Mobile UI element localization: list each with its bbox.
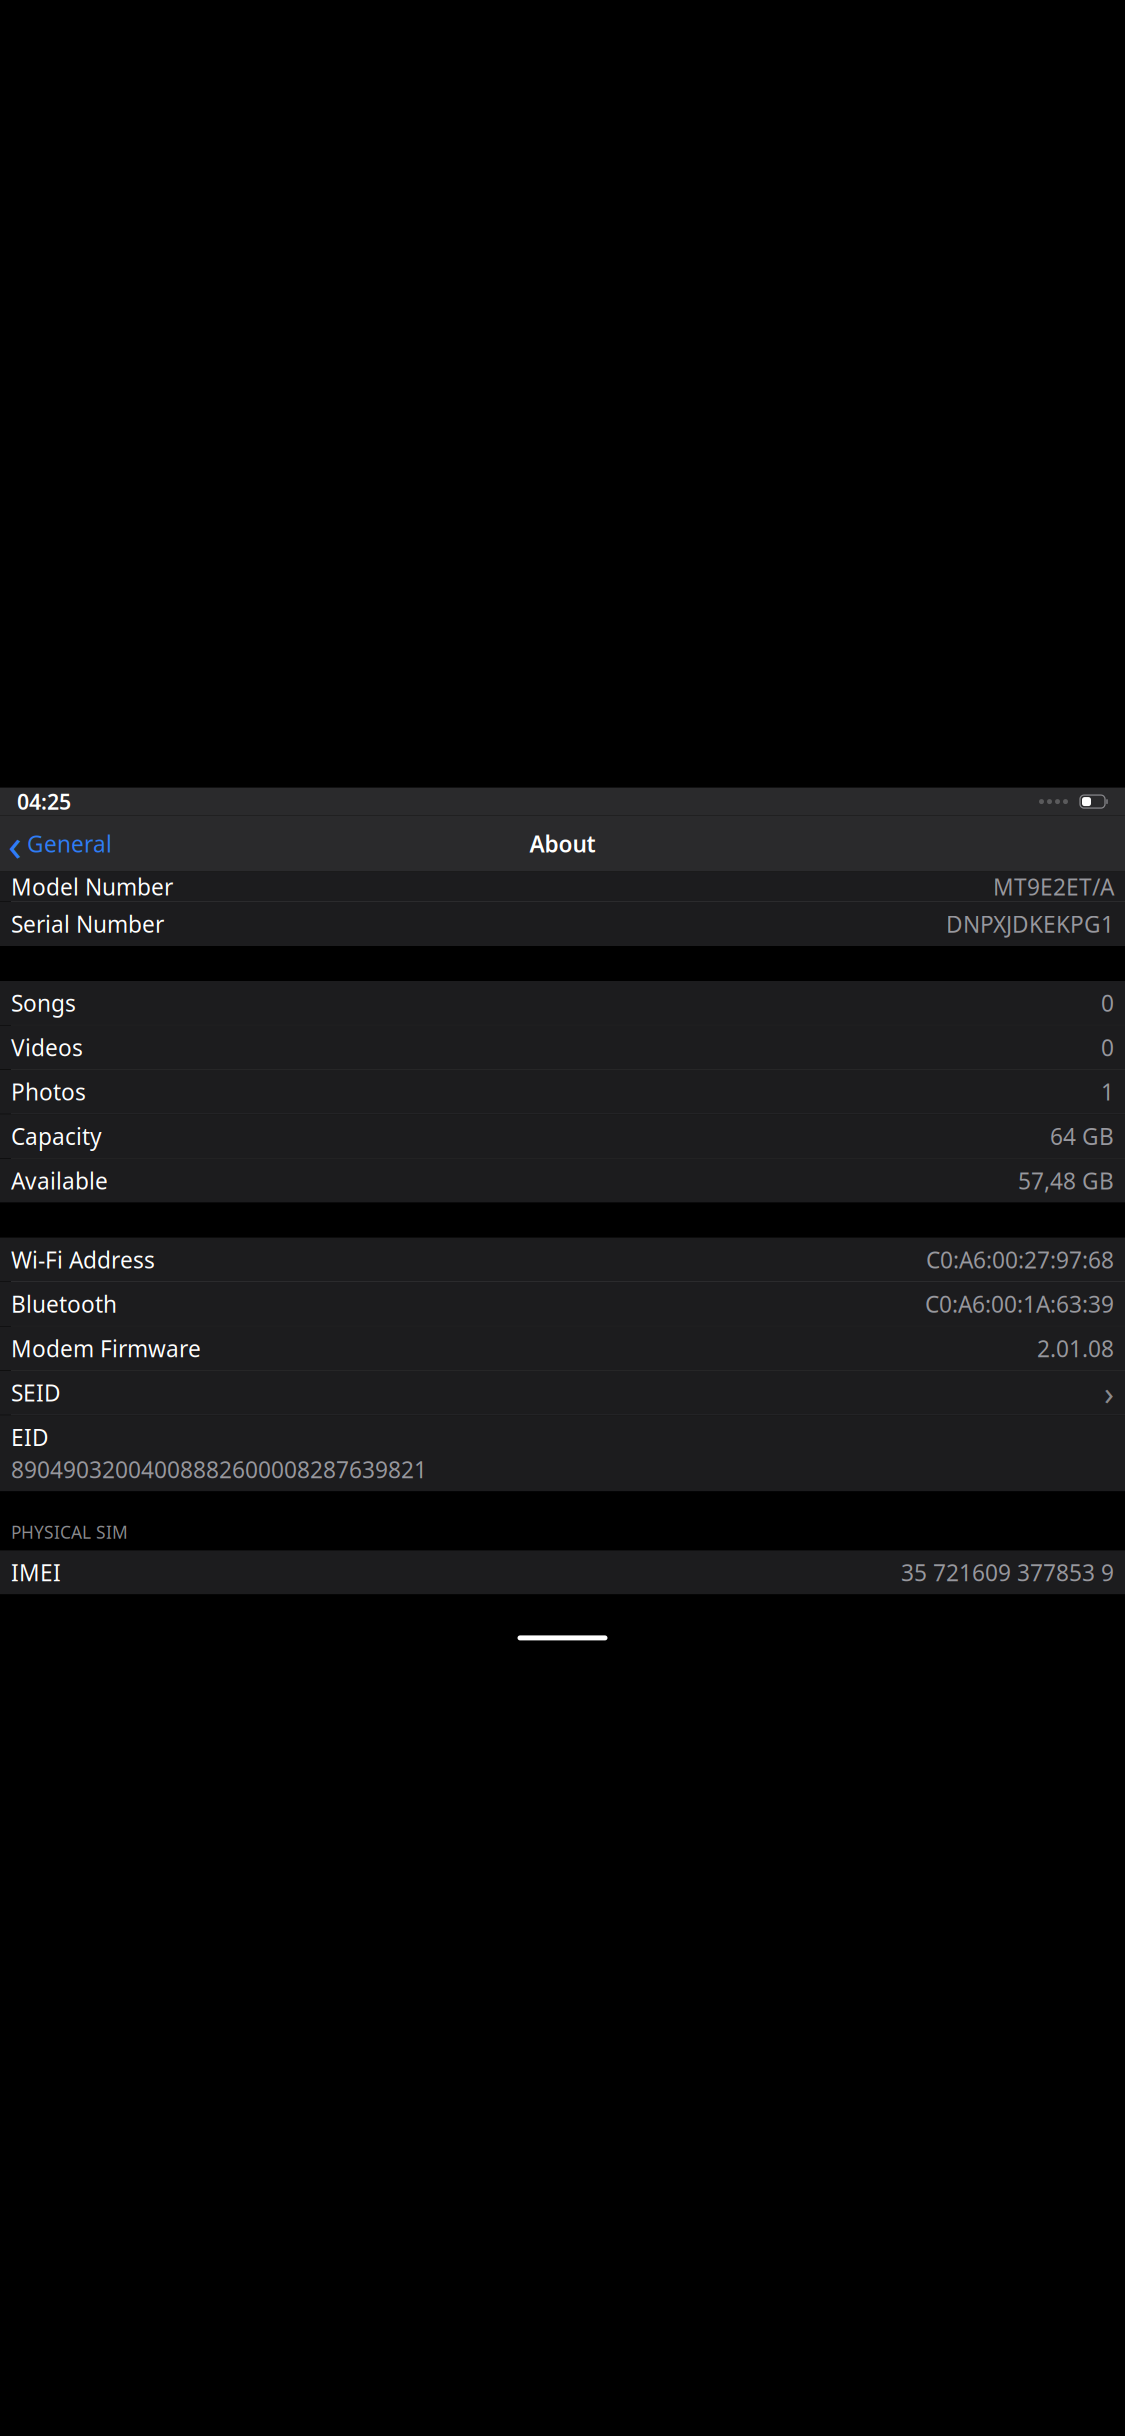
staticText: 89049032004008882600008287639821 xyxy=(11,1454,427,1484)
staticText: 1 xyxy=(1101,1077,1114,1107)
staticText: Bluetooth xyxy=(11,1289,117,1319)
staticText: › xyxy=(1104,1371,1114,1414)
staticText: Model Number xyxy=(11,872,173,902)
staticText: 35 721609 377853 9 xyxy=(901,1557,1114,1587)
button[interactable]: Photos xyxy=(0,1070,1125,1114)
staticText: C0:A6:00:1A:63:39 xyxy=(925,1289,1114,1319)
staticText: C0:A6:00:27:97:68 xyxy=(926,1244,1114,1275)
button[interactable]: IMEI xyxy=(0,1550,1125,1594)
staticText: 0 xyxy=(1101,1032,1114,1062)
staticText: Songs xyxy=(11,988,76,1018)
staticText: PHYSICAL SIM xyxy=(11,1520,128,1543)
staticText: IMEI xyxy=(11,1557,61,1587)
staticText: Modem Firmware xyxy=(11,1333,201,1363)
staticText: 57,48 GB xyxy=(1018,1165,1114,1196)
staticText: ‹ xyxy=(8,813,22,874)
button[interactable]: Bluetooth xyxy=(0,1282,1125,1326)
staticText: 0 xyxy=(1101,988,1114,1018)
button[interactable]: Model Number xyxy=(0,872,1125,902)
staticText: SEID xyxy=(11,1378,61,1408)
staticText: Capacity xyxy=(11,1121,102,1151)
staticText: 2.01.08 xyxy=(1037,1333,1114,1363)
staticText: 04:25 xyxy=(17,787,71,816)
button[interactable]: Modem Firmware xyxy=(0,1326,1125,1370)
staticText: Wi-Fi Address xyxy=(11,1244,155,1275)
staticText: General xyxy=(27,828,112,859)
button[interactable]: SEID xyxy=(0,1371,1125,1415)
button[interactable]: Serial Number xyxy=(0,902,1125,946)
button[interactable]: Wi-Fi Address xyxy=(0,1238,1125,1282)
staticText: MT9E2ET/A xyxy=(993,872,1114,902)
button[interactable]: Songs xyxy=(0,981,1125,1025)
button[interactable]: Videos xyxy=(0,1025,1125,1069)
button[interactable]: Available xyxy=(0,1159,1125,1203)
staticText: DNPXJDKEKPG1 xyxy=(946,909,1114,939)
staticText: Serial Number xyxy=(11,909,164,939)
staticText: About xyxy=(529,828,595,859)
button[interactable]: Capacity xyxy=(0,1114,1125,1158)
staticText: 64 GB xyxy=(1050,1121,1114,1151)
button[interactable]: EID xyxy=(0,1415,1125,1491)
staticText: Available xyxy=(11,1165,108,1196)
staticText: EID xyxy=(11,1422,49,1452)
staticText: Videos xyxy=(11,1032,83,1062)
staticText: Photos xyxy=(11,1077,86,1107)
button[interactable]: ‹ xyxy=(2,822,118,866)
